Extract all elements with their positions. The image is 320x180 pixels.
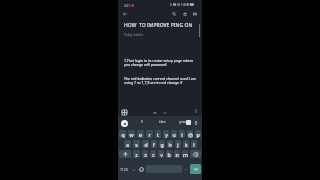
staticText: l [193,141,195,148]
button[interactable]: g [159,140,165,148]
button[interactable]: . [183,164,189,174]
button[interactable]: f [151,140,157,148]
staticText: f [153,141,155,148]
staticText: p [196,131,200,138]
staticText: x [144,151,147,158]
button[interactable]: Search [169,9,178,18]
staticText: 4:21 [124,4,130,8]
button[interactable]: Bookmark [180,9,189,18]
button[interactable]: a [124,140,131,148]
button[interactable]: r [146,130,153,138]
staticText: c [152,151,155,158]
button[interactable]: Sticker [161,109,169,116]
button[interactable]: Backspace [190,150,201,158]
staticText: o [189,133,192,138]
button[interactable]: d [142,140,149,148]
button[interactable]: GIF [151,109,159,116]
staticText: j [177,141,179,148]
staticText: The red indicates current channel used I… [124,76,198,85]
staticText: the [159,119,166,125]
button[interactable]: p [195,130,201,138]
staticText: r [148,131,151,138]
staticText: y [165,131,168,138]
button[interactable]: m [182,150,188,158]
staticText: m [183,151,188,158]
button[interactable]: o [187,130,193,138]
button[interactable]: the [156,116,168,128]
button[interactable]: Enter [190,164,201,174]
button[interactable]: Clipboard [186,120,191,125]
button[interactable]: z [133,150,140,158]
button[interactable]: b [166,150,172,158]
staticText: h [168,141,172,148]
button[interactable]: t [155,130,161,138]
button[interactable]: Back [120,9,129,18]
staticText: . [185,166,187,172]
staticText: 1.First login in to router setup page wh… [124,58,198,67]
button[interactable]: n [174,150,180,158]
button[interactable]: you [177,116,189,128]
button[interactable]: v [158,150,164,158]
staticText: d [144,141,148,148]
button[interactable]: q [119,130,126,138]
button[interactable]: l [191,140,197,148]
staticText: q [121,131,125,138]
button[interactable]: Assistant [121,120,128,127]
button[interactable]: w [128,130,135,138]
button[interactable]: Shift [119,150,131,158]
staticText: g [160,141,164,148]
staticText: HOW TO IMPROVE PING ON [124,22,193,29]
staticText: Pubg mobile [124,33,143,37]
button[interactable]: u [171,130,177,138]
button[interactable]: x [142,150,148,158]
staticText: , [133,166,135,172]
staticText: ?123 [120,167,128,172]
staticText: n [175,151,179,158]
button[interactable]: Emoji [137,164,145,174]
staticText: b [167,151,171,158]
staticText: k [185,141,188,148]
button[interactable]: k [183,140,189,148]
button[interactable]: s [133,140,140,148]
button[interactable]: i [179,130,185,138]
staticText: z [135,151,138,158]
button[interactable]: e [137,130,144,138]
button[interactable]: , [130,164,137,174]
button[interactable]: ?123 [118,164,130,174]
staticText: w [129,131,134,138]
button[interactable]: Voice input [192,119,199,126]
button[interactable]: h [167,140,173,148]
staticText: I [141,119,143,125]
button[interactable]: y [163,130,169,138]
staticText: i [181,131,183,138]
button[interactable]: More options [190,9,199,18]
staticText: e [139,131,142,138]
button[interactable]: c [150,150,156,158]
staticText: t [157,131,159,138]
staticText: you [179,119,187,125]
button[interactable]: I [136,116,148,128]
staticText: u [172,131,176,138]
staticText: v [160,151,163,158]
button[interactable]: j [175,140,181,148]
button[interactable]: More [192,107,200,115]
staticText: a [126,141,129,148]
button[interactable]: Keyboard tools [120,109,128,116]
staticText: s [135,141,138,148]
